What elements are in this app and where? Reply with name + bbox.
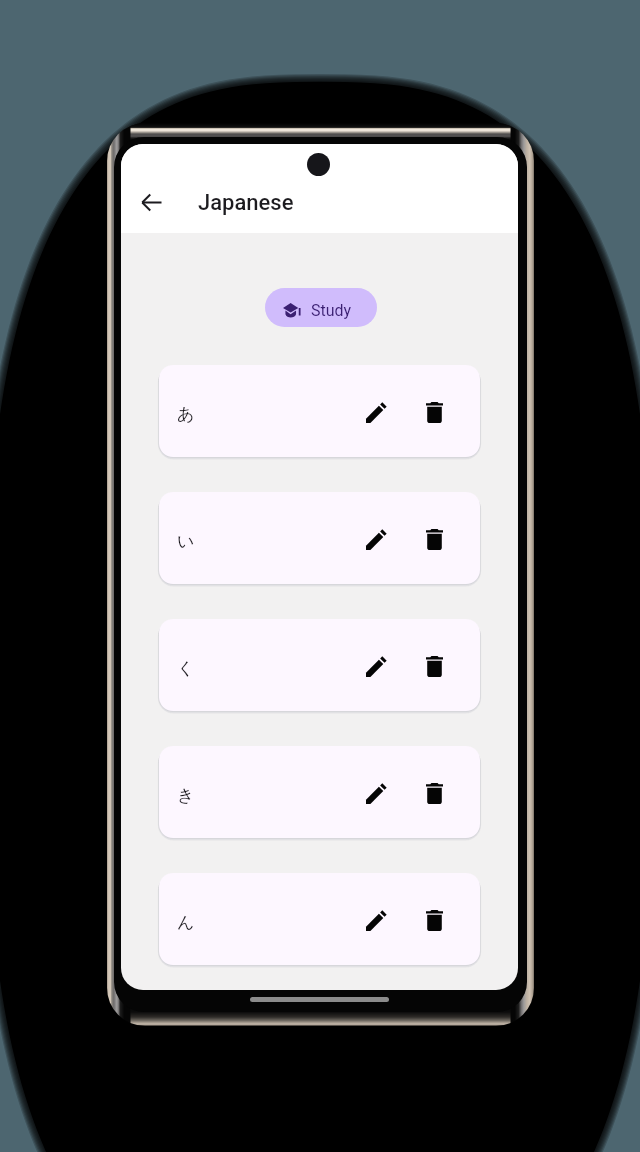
button[interactable]: ん — [159, 873, 480, 965]
staticText: Study — [311, 301, 352, 320]
button[interactable]: Delete — [412, 389, 456, 433]
staticText: Japanese — [198, 190, 294, 216]
button[interactable]: Study — [265, 288, 377, 327]
staticText: ん — [177, 912, 195, 933]
button[interactable]: Delete — [412, 516, 456, 560]
button[interactable]: Delete — [412, 770, 456, 814]
button[interactable]: あ — [159, 365, 480, 457]
staticText: い — [177, 531, 195, 552]
button[interactable]: き — [159, 746, 480, 838]
button[interactable]: Edit — [354, 643, 398, 687]
staticText: あ — [177, 404, 195, 425]
staticText: く — [177, 658, 195, 679]
button[interactable]: い — [159, 492, 480, 584]
button[interactable]: Edit — [354, 389, 398, 433]
button[interactable]: Edit — [354, 770, 398, 814]
button[interactable]: Delete — [412, 643, 456, 687]
button[interactable]: Delete — [412, 897, 456, 941]
staticText: き — [177, 785, 195, 806]
button[interactable]: Edit — [354, 897, 398, 941]
button[interactable]: く — [159, 619, 480, 711]
button[interactable]: Edit — [354, 516, 398, 560]
button[interactable]: Back — [131, 182, 172, 223]
